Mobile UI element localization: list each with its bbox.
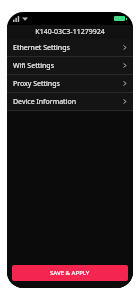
button[interactable]: SAVE & APPLY [12, 265, 128, 281]
staticText: Ethernet Settings [13, 43, 70, 53]
button[interactable]: Proxy Settings [7, 75, 133, 92]
staticText: SAVE & APPLY [50, 269, 90, 277]
staticText: Device Information [13, 97, 77, 107]
staticText: Proxy Settings [13, 79, 60, 89]
staticText: Wifi Settings [13, 61, 54, 71]
staticText: K140-03C3-11279924 [35, 27, 105, 37]
button[interactable]: Ethernet Settings [7, 39, 133, 56]
button[interactable]: Device Information [7, 93, 133, 110]
button[interactable]: Wifi Settings [7, 57, 133, 74]
